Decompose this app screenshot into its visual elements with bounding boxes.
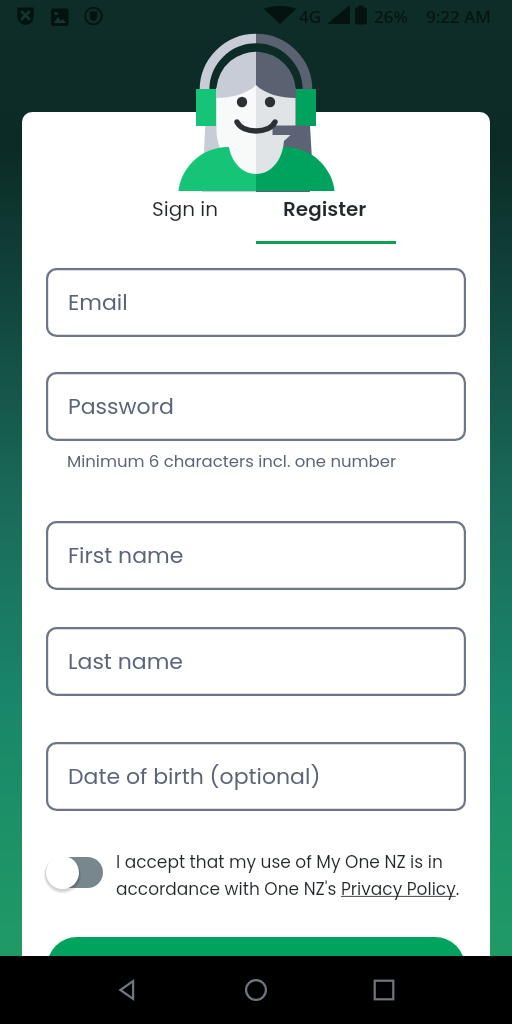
button[interactable]: Email bbox=[46, 268, 466, 337]
staticText: Last name bbox=[68, 646, 183, 677]
staticText: Register bbox=[218, 955, 294, 980]
button[interactable]: Password bbox=[46, 372, 466, 441]
button[interactable]: Accept terms toggle bbox=[44, 852, 106, 894]
button[interactable]: Date of birth (optional) bbox=[46, 742, 466, 811]
button[interactable]: Last name bbox=[46, 627, 466, 696]
staticText: Email bbox=[68, 287, 128, 318]
button[interactable]: Register bbox=[255, 183, 395, 234]
staticText: Date of birth (optional) bbox=[68, 761, 321, 792]
button[interactable]: Recent apps bbox=[368, 974, 400, 1006]
staticText: First name bbox=[68, 540, 184, 571]
button[interactable]: Back bbox=[112, 974, 144, 1006]
staticText: Minimum 6 characters incl. one number bbox=[67, 450, 397, 473]
staticText: 4G bbox=[299, 5, 322, 28]
staticText: Register bbox=[283, 195, 367, 223]
staticText: Sign in bbox=[152, 195, 219, 223]
button[interactable]: First name bbox=[46, 521, 466, 590]
button[interactable]: Register bbox=[47, 937, 465, 997]
button[interactable]: Home bbox=[240, 974, 272, 1006]
staticText: I accept that my use of My One NZ is in … bbox=[116, 850, 468, 901]
staticText: 26% bbox=[374, 5, 408, 28]
staticText: Password bbox=[68, 391, 174, 422]
button[interactable]: Sign in bbox=[115, 183, 255, 234]
staticText: 9:22 AM bbox=[426, 5, 491, 28]
